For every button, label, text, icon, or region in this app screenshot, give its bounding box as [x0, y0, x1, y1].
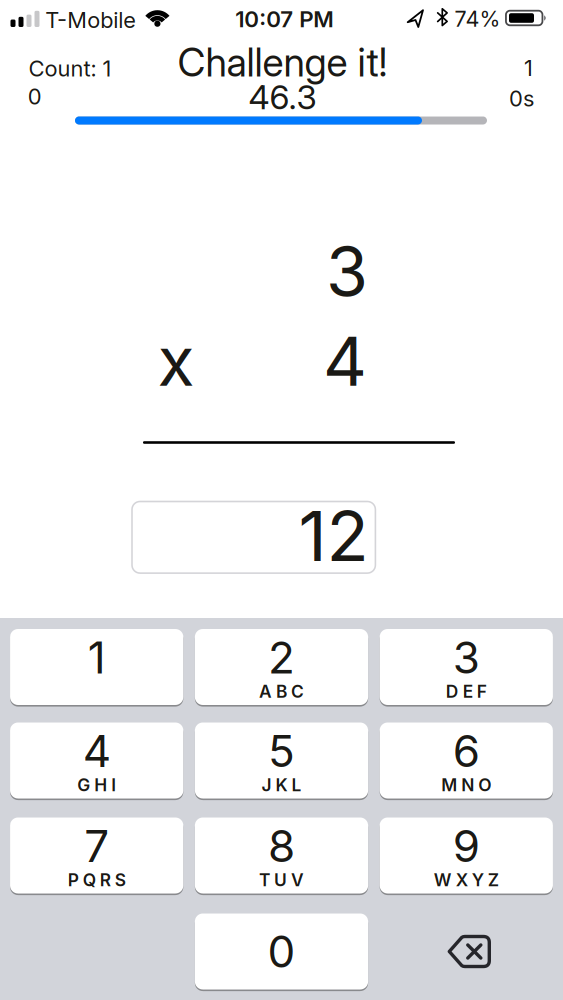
staticText: 3	[326, 230, 368, 312]
staticText: T U V	[259, 869, 304, 890]
button[interactable]: Delete	[383, 913, 556, 989]
staticText: 10:07 PM	[235, 5, 334, 32]
button[interactable]: 2	[195, 629, 368, 705]
staticText: A B C	[259, 681, 304, 702]
staticText: 2	[268, 631, 295, 684]
staticText: 6	[453, 724, 480, 778]
button[interactable]: 3	[380, 629, 553, 705]
button[interactable]: 0	[195, 913, 368, 989]
staticText: 8	[268, 819, 295, 873]
staticText: 5	[268, 724, 295, 778]
button[interactable]: 8	[195, 817, 368, 893]
staticText: 1	[88, 631, 106, 684]
staticText: 0	[28, 83, 42, 110]
staticText: P Q R S	[68, 869, 126, 890]
staticText: 0	[267, 925, 295, 978]
staticText: Count: 1	[28, 55, 111, 82]
button[interactable]: 7	[10, 817, 183, 893]
staticText: 3	[453, 631, 480, 684]
staticText: 74%	[454, 6, 500, 32]
staticText: 12	[298, 494, 368, 578]
staticText: 9	[453, 819, 480, 873]
staticText: 4	[323, 320, 367, 402]
staticText: D E F	[446, 681, 487, 702]
button[interactable]: 9	[380, 817, 553, 893]
staticText: x	[157, 320, 194, 402]
button[interactable]: 4	[10, 722, 183, 798]
staticText: M N O	[441, 774, 491, 795]
staticText: T-Mobile	[45, 7, 136, 33]
staticText: 1	[524, 55, 533, 81]
staticText: W X Y Z	[434, 869, 499, 890]
button[interactable]: 6	[380, 722, 553, 798]
button[interactable]: Answer	[132, 501, 375, 573]
staticText: J K L	[261, 774, 301, 795]
staticText: 46.3	[248, 77, 316, 117]
button[interactable]: 1	[10, 629, 183, 705]
staticText: 0s	[509, 85, 534, 112]
staticText: 4	[83, 724, 111, 778]
button[interactable]: 5	[195, 722, 368, 798]
staticText: Challenge it!	[177, 39, 387, 86]
staticText: 7	[84, 819, 109, 873]
staticText: G H I	[77, 774, 116, 795]
